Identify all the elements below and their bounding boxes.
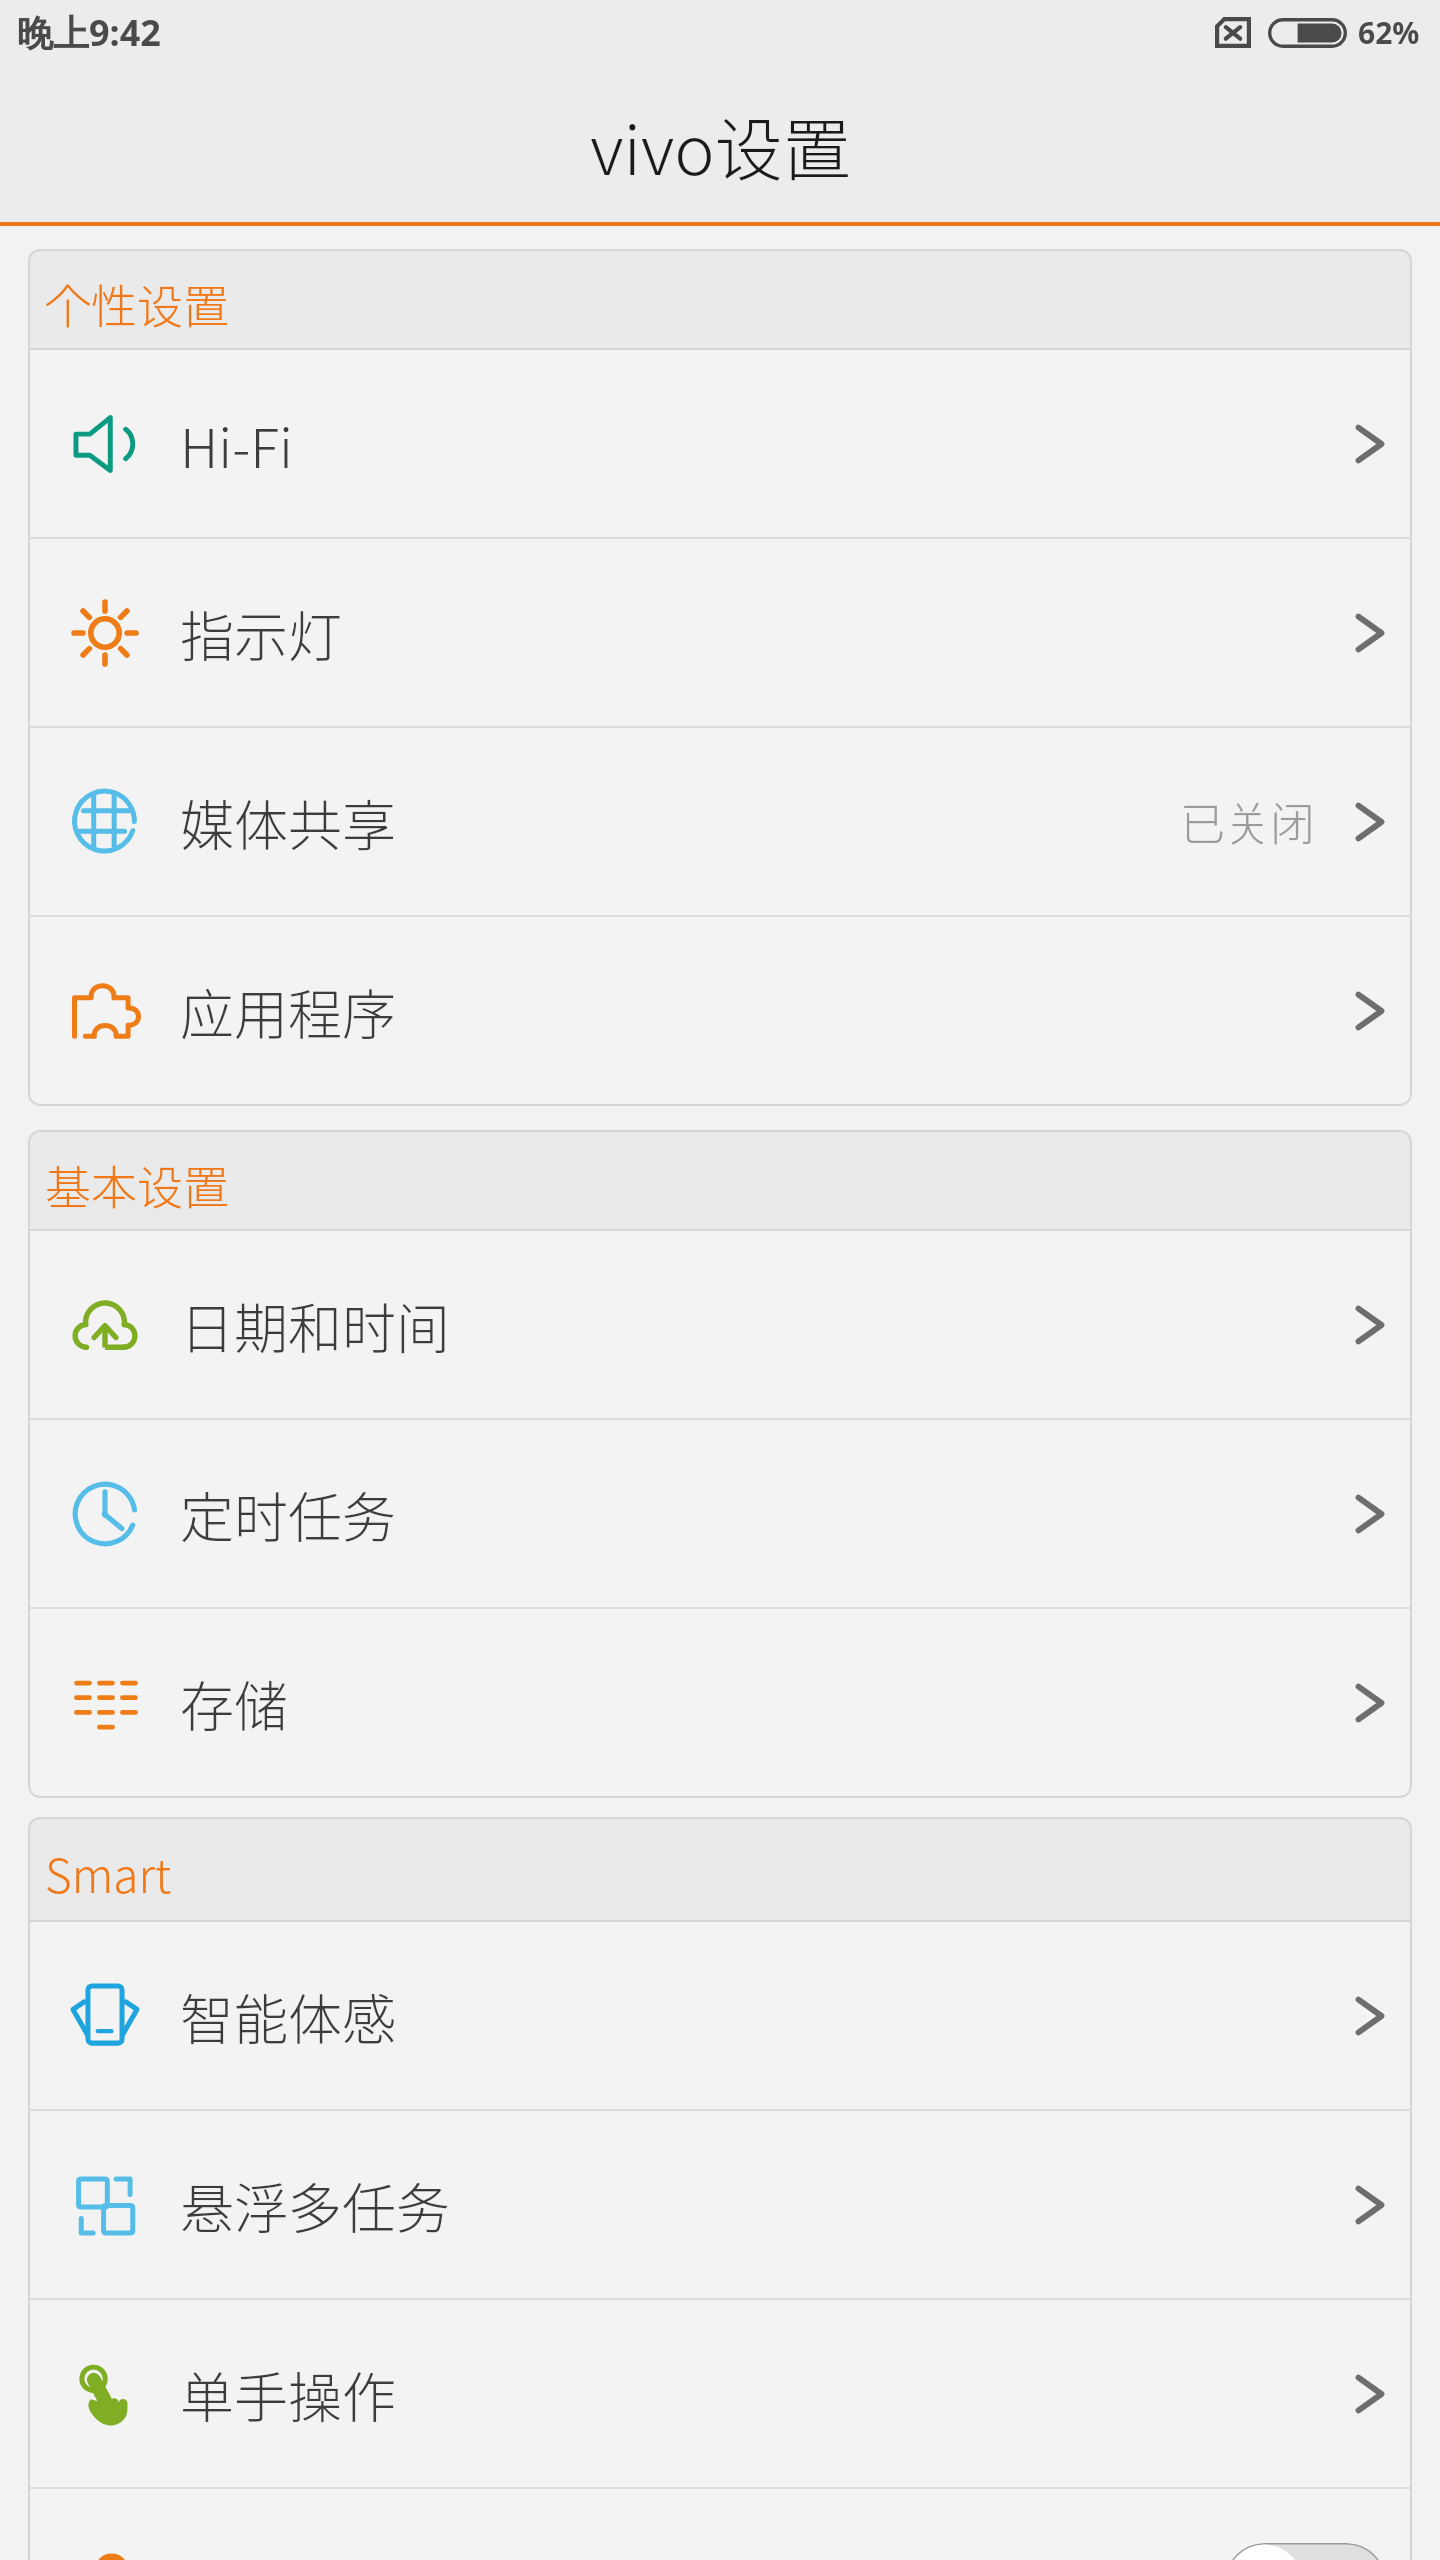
button[interactable]: 指示灯	[28, 539, 1412, 726]
other: Open 存储	[1355, 1683, 1385, 1723]
other: Open Hi-Fi	[1355, 424, 1385, 464]
staticText: 单手操作	[180, 2355, 396, 2433]
staticText: 已关闭	[1180, 789, 1316, 854]
other: No SIM	[1215, 17, 1251, 48]
other: Open 定时任务	[1355, 1494, 1385, 1534]
button[interactable]: 单手操作	[28, 2300, 1412, 2487]
other: Battery 62 percent	[1268, 18, 1347, 48]
button[interactable]: 日期和时间	[28, 1231, 1412, 1418]
staticText: 62%	[1358, 12, 1420, 53]
staticText: 基本设置	[45, 1151, 229, 1218]
staticText: vivo设置	[590, 96, 851, 194]
other: Open 单手操作	[1355, 2374, 1385, 2414]
staticText: 晚上9:42	[17, 8, 161, 57]
button[interactable]: 应用程序	[28, 917, 1412, 1104]
staticText: 指示灯	[180, 594, 342, 672]
staticText: Smart	[45, 1840, 172, 1907]
staticText: 个性设置	[45, 270, 229, 337]
staticText: 智能体感	[180, 1977, 396, 2055]
staticText: 日期和时间	[180, 1286, 450, 1364]
staticText: 悬浮多任务	[180, 2166, 450, 2244]
button[interactable]: 媒体共享	[28, 728, 1412, 915]
other: Open 指示灯	[1355, 613, 1385, 653]
other: Open 智能体感	[1355, 1996, 1385, 2036]
button[interactable]: 存储	[28, 1609, 1412, 1796]
staticText: 定时任务	[180, 1475, 396, 1553]
button[interactable]: 悬浮多任务	[28, 2111, 1412, 2298]
other: Open 日期和时间	[1355, 1305, 1385, 1345]
other: Open 媒体共享	[1355, 802, 1385, 842]
staticText: 媒体共享	[180, 783, 396, 861]
staticText: 应用程序	[180, 972, 396, 1050]
button[interactable]: Hi-Fi	[28, 350, 1412, 537]
other: Open 悬浮多任务	[1355, 2185, 1385, 2225]
staticText: 存储	[180, 1664, 288, 1742]
staticText: Hi-Fi	[180, 405, 293, 483]
button[interactable]: 超级截屏 switch, off	[1225, 2543, 1386, 2560]
button[interactable]: 定时任务	[28, 1420, 1412, 1607]
other: Open 应用程序	[1355, 991, 1385, 1031]
button[interactable]: 智能体感	[28, 1922, 1412, 2109]
button[interactable]: 超级截屏	[28, 2489, 1412, 2560]
